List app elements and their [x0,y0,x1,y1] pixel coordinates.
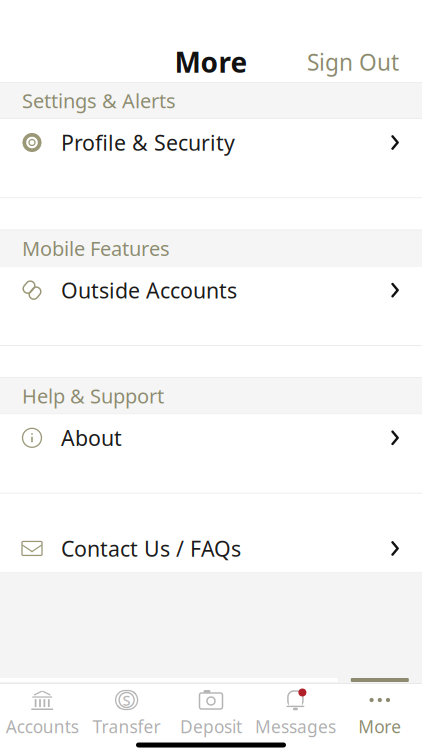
staticText: About [61,424,122,452]
button[interactable]: Deposit [169,684,253,740]
staticText: Deposit [180,715,242,738]
staticText: Settings & Alerts [22,87,176,114]
button[interactable]: Messages [253,684,338,740]
staticText: Contact Us / FAQs [61,534,241,563]
button[interactable]: About [0,414,422,525]
button[interactable]: Contact Us / FAQs [0,525,422,573]
button[interactable]: Outside Accounts [0,267,422,377]
button[interactable]: Sign Out [293,39,413,85]
button[interactable]: More [338,684,422,740]
staticText: Profile & Security [61,128,235,157]
staticText: Help & Support [22,382,164,409]
button[interactable]: S [84,684,169,740]
staticText: More [174,43,247,81]
staticText: Mobile Features [22,235,170,261]
staticText: More [358,715,401,738]
staticText: Transfer [93,715,161,738]
button[interactable]: Profile & Security [0,119,422,230]
staticText: Sign Out [307,47,399,77]
staticText: S [123,690,131,710]
staticText: Outside Accounts [61,276,237,304]
staticText: Messages [255,715,336,738]
button[interactable]: Accounts [0,684,84,740]
staticText: Accounts [6,715,79,738]
